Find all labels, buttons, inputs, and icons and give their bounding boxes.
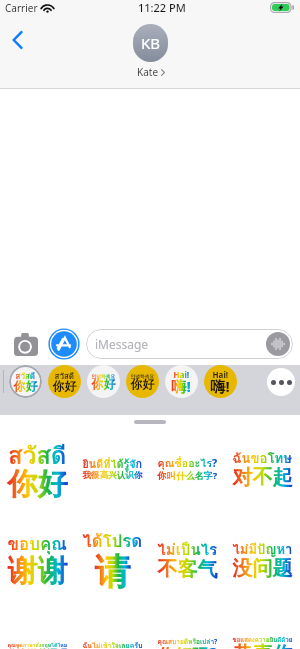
button[interactable] bbox=[0, 597, 75, 649]
button[interactable] bbox=[87, 365, 120, 398]
button[interactable] bbox=[75, 597, 150, 649]
button[interactable]: More apps bbox=[267, 368, 295, 396]
button[interactable] bbox=[204, 365, 237, 398]
staticText: iMessage bbox=[95, 336, 149, 352]
button[interactable] bbox=[75, 506, 150, 597]
button[interactable]: Audio message bbox=[266, 332, 290, 356]
button[interactable] bbox=[150, 506, 225, 597]
button[interactable] bbox=[150, 415, 225, 506]
button[interactable] bbox=[225, 597, 300, 649]
button[interactable]: Back bbox=[3, 26, 31, 54]
button[interactable]: Kate profile bbox=[133, 24, 168, 62]
button[interactable]: App Store bbox=[48, 328, 80, 360]
button[interactable] bbox=[0, 415, 75, 506]
button[interactable]: iMessage bbox=[86, 329, 293, 359]
button[interactable] bbox=[9, 365, 42, 398]
button[interactable] bbox=[126, 365, 159, 398]
button[interactable] bbox=[225, 506, 300, 597]
staticText: 11:22 PM bbox=[138, 0, 186, 15]
button[interactable] bbox=[48, 365, 81, 398]
button[interactable]: Camera bbox=[14, 331, 38, 357]
button[interactable] bbox=[225, 415, 300, 506]
button[interactable] bbox=[165, 365, 198, 398]
staticText: Carrier bbox=[5, 1, 38, 15]
button[interactable] bbox=[150, 597, 225, 649]
button[interactable] bbox=[75, 415, 150, 506]
staticText: KB bbox=[141, 33, 161, 53]
button[interactable] bbox=[0, 506, 75, 597]
staticText: Kate bbox=[137, 65, 159, 79]
